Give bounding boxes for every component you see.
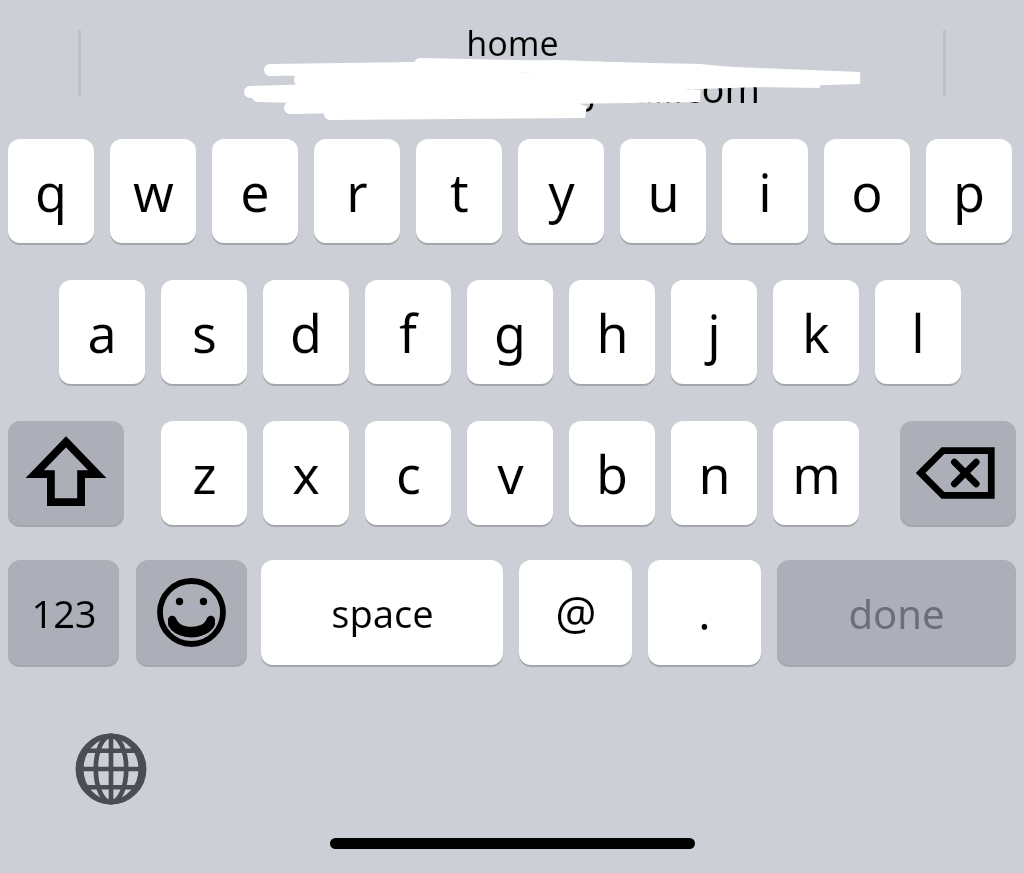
staticText: h — [596, 297, 629, 368]
button[interactable]: i — [722, 139, 808, 243]
button[interactable]: y — [518, 139, 604, 243]
button[interactable]: d — [263, 280, 349, 384]
button[interactable]: e — [212, 139, 298, 243]
button[interactable]: q — [8, 139, 94, 243]
staticText: done — [848, 586, 945, 640]
staticText: n — [698, 438, 731, 509]
button[interactable]: Shift — [8, 421, 124, 525]
button[interactable]: j — [671, 280, 757, 384]
button[interactable]: k — [773, 280, 859, 384]
button[interactable]: done — [777, 560, 1016, 665]
staticText: t — [450, 156, 469, 227]
button[interactable]: z — [161, 421, 247, 525]
button[interactable]: x — [263, 421, 349, 525]
button[interactable]: a — [59, 280, 145, 384]
button[interactable]: space — [261, 560, 503, 665]
staticText: v — [497, 438, 524, 509]
staticText: a — [87, 297, 117, 368]
staticText: @ — [555, 581, 597, 644]
button[interactable]: g — [467, 280, 553, 384]
button[interactable]: . — [648, 560, 761, 665]
button[interactable]: @ — [519, 560, 632, 665]
button[interactable]: o — [824, 139, 910, 243]
button[interactable]: p — [926, 139, 1012, 243]
button[interactable]: m — [773, 421, 859, 525]
button[interactable]: w — [110, 139, 196, 243]
staticText: f — [399, 297, 417, 368]
button[interactable]: t — [416, 139, 502, 243]
staticText: z — [192, 438, 217, 509]
button[interactable]: 123 — [8, 560, 119, 665]
staticText: o — [851, 156, 883, 227]
staticText: j — [707, 297, 721, 368]
staticText: r — [346, 156, 368, 227]
button[interactable]: Change keyboard language — [75, 733, 147, 805]
button[interactable]: l — [875, 280, 961, 384]
button[interactable]: c — [365, 421, 451, 525]
button[interactable]: s — [161, 280, 247, 384]
button[interactable]: u — [620, 139, 706, 243]
staticText: p — [953, 156, 985, 227]
staticText: s — [192, 297, 217, 368]
staticText: q — [35, 156, 67, 227]
staticText: g — [494, 297, 526, 368]
staticText: w — [133, 156, 174, 227]
staticText: sally.smith@gmail.com — [351, 62, 760, 112]
button[interactable]: v — [467, 421, 553, 525]
staticText: . — [698, 581, 711, 644]
staticText: l — [911, 297, 925, 368]
button[interactable]: n — [671, 421, 757, 525]
staticText: m — [792, 438, 841, 509]
staticText: 123 — [31, 587, 97, 639]
button[interactable]: Emoji — [136, 560, 247, 665]
button[interactable]: f — [365, 280, 451, 384]
staticText: e — [240, 156, 270, 227]
staticText: b — [596, 438, 628, 509]
staticText: c — [396, 438, 421, 509]
staticText: i — [758, 156, 772, 227]
staticText: y — [548, 156, 575, 227]
staticText: home — [466, 20, 559, 62]
staticText: u — [647, 156, 680, 227]
button[interactable]: h — [569, 280, 655, 384]
staticText: x — [292, 438, 320, 509]
staticText: d — [290, 297, 322, 368]
button[interactable]: r — [314, 139, 400, 243]
staticText: space — [331, 587, 434, 639]
staticText: k — [802, 297, 830, 368]
button[interactable]: b — [569, 421, 655, 525]
button[interactable]: Backspace — [900, 421, 1016, 525]
